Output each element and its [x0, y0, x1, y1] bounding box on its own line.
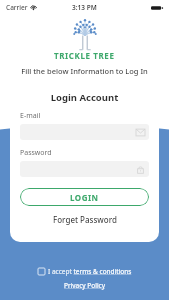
button[interactable]: Forget Password [20, 212, 149, 227]
staticText: E-mail [20, 111, 41, 121]
staticText: Fill the below Information to Log In [0, 66, 169, 76]
button[interactable]: LOGIN [20, 188, 149, 206]
button[interactable]: Privacy Policy [60, 280, 110, 291]
staticText: Login Account [20, 91, 149, 104]
staticText: Forget Password [53, 214, 117, 225]
staticText: I accept terms & conditions [48, 267, 132, 276]
button[interactable]: Accept terms checkbox [34, 265, 136, 278]
other: Accept terms checkbox [38, 268, 45, 275]
staticText: Password [20, 148, 52, 158]
staticText: TRICKLE TREE [54, 50, 115, 61]
staticText: Carrier [6, 3, 28, 12]
staticText: Privacy Policy [64, 281, 106, 290]
staticText: LOGIN [70, 192, 99, 203]
staticText: 3:13 PM [72, 3, 97, 12]
